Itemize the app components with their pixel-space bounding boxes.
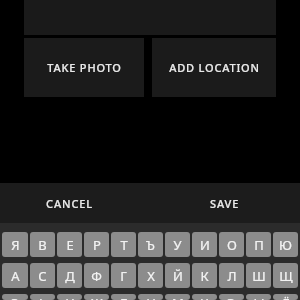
- button[interactable]: Н: [138, 294, 163, 300]
- button[interactable]: О: [219, 232, 244, 257]
- button[interactable]: И: [192, 232, 217, 257]
- staticText: Н: [146, 294, 156, 300]
- staticText: В: [38, 236, 47, 254]
- button[interactable]: CANCEL: [34, 188, 106, 219]
- staticText: Т: [120, 236, 128, 254]
- staticText: TAKE PHOTO: [47, 60, 122, 75]
- staticText: Р: [93, 236, 101, 254]
- staticText: З: [11, 294, 19, 300]
- button[interactable]: SAVE: [198, 188, 252, 219]
- button[interactable]: З: [2, 294, 28, 300]
- button[interactable]: Т: [111, 232, 136, 257]
- staticText: Л: [227, 267, 237, 285]
- button[interactable]: М: [165, 294, 190, 300]
- button[interactable]: TAKE PHOTO: [24, 38, 144, 97]
- staticText: Й: [173, 267, 183, 285]
- staticText: Ц: [65, 294, 75, 300]
- button[interactable]: К: [192, 263, 217, 288]
- button[interactable]: А: [2, 263, 28, 288]
- staticText: Ж: [91, 294, 103, 300]
- button[interactable]: Ь: [30, 294, 55, 300]
- staticText: Б: [120, 294, 128, 300]
- staticText: Г: [120, 267, 127, 285]
- staticText: У: [173, 236, 182, 254]
- button[interactable]: Ё: [273, 294, 298, 300]
- staticText: Д: [65, 267, 75, 285]
- staticText: М: [172, 294, 184, 300]
- button[interactable]: Ш: [246, 263, 271, 288]
- staticText: Ь: [39, 294, 47, 300]
- staticText: Ы: [253, 294, 265, 300]
- staticText: К: [200, 267, 209, 285]
- button[interactable]: Ж: [84, 294, 109, 300]
- button[interactable]: Ы: [246, 294, 271, 300]
- staticText: С: [38, 267, 47, 285]
- staticText: Ъ: [146, 236, 155, 254]
- staticText: Э: [227, 294, 236, 300]
- button[interactable]: Х: [138, 263, 163, 288]
- button[interactable]: ADD LOCATION: [152, 38, 276, 97]
- button[interactable]: Е: [57, 232, 82, 257]
- button[interactable]: Ю: [273, 232, 298, 257]
- staticText: CANCEL: [46, 196, 94, 211]
- staticText: Ш: [252, 267, 266, 285]
- button[interactable]: Б: [111, 294, 136, 300]
- button[interactable]: Р: [84, 232, 109, 257]
- staticText: Ф: [91, 267, 102, 285]
- button[interactable]: В: [30, 232, 55, 257]
- staticText: Ю: [279, 236, 292, 254]
- staticText: Щ: [279, 267, 293, 285]
- button[interactable]: Ф: [84, 263, 109, 288]
- staticText: SAVE: [210, 196, 240, 211]
- staticText: Е: [66, 236, 74, 254]
- staticText: О: [227, 236, 237, 254]
- staticText: П: [254, 236, 264, 254]
- button[interactable]: П: [246, 232, 271, 257]
- staticText: Я: [11, 236, 20, 254]
- button[interactable]: Щ: [273, 263, 298, 288]
- button[interactable]: Л: [219, 263, 244, 288]
- button[interactable]: Ч: [192, 294, 217, 300]
- button[interactable]: У: [165, 232, 190, 257]
- button[interactable]: Д: [57, 263, 82, 288]
- staticText: Ё: [282, 294, 290, 300]
- staticText: Ч: [200, 294, 209, 300]
- button[interactable]: С: [30, 263, 55, 288]
- staticText: А: [11, 267, 20, 285]
- button[interactable]: Ц: [57, 294, 82, 300]
- button[interactable]: Я: [2, 232, 28, 257]
- button[interactable]: Э: [219, 294, 244, 300]
- button[interactable]: Й: [165, 263, 190, 288]
- staticText: ADD LOCATION: [169, 60, 260, 75]
- staticText: Х: [147, 267, 155, 285]
- button[interactable]: Ъ: [138, 232, 163, 257]
- staticText: И: [200, 236, 210, 254]
- button[interactable]: Г: [111, 263, 136, 288]
